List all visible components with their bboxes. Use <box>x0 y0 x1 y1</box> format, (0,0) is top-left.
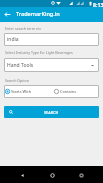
button[interactable]: india <box>4 33 99 46</box>
staticText: Hand Tools <box>7 62 34 69</box>
button[interactable]: Contains <box>53 89 97 94</box>
button[interactable]: Home <box>44 167 60 183</box>
button[interactable]: SEARCH <box>4 106 99 118</box>
staticText: Select Industry Type Ex: Light Beverages <box>5 50 73 55</box>
staticText: Starts With <box>11 89 32 94</box>
staticText: Contains <box>60 89 77 94</box>
button[interactable]: Hand Tools <box>4 58 99 72</box>
staticText: Search Option <box>5 78 29 83</box>
button[interactable]: Recent apps <box>73 167 89 183</box>
staticText: SEARCH <box>44 110 59 115</box>
button[interactable]: Starts With <box>4 89 53 94</box>
button[interactable]: Navigate up <box>0 7 15 22</box>
staticText: TrademarKing.in <box>16 10 60 17</box>
staticText: Enter search term etc <box>5 26 42 31</box>
staticText: 8:13 <box>93 1 103 8</box>
button[interactable]: Back <box>14 167 30 183</box>
staticText: india <box>7 36 19 43</box>
